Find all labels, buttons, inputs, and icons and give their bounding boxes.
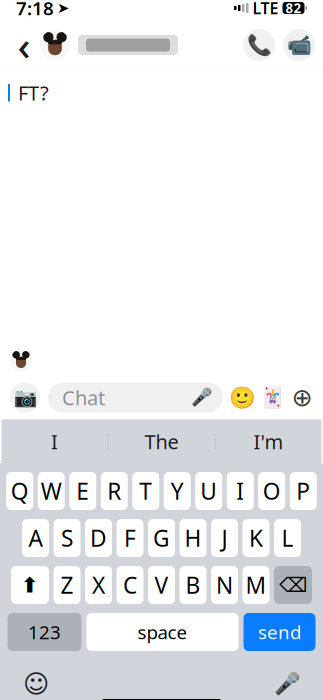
button[interactable]: I <box>227 472 254 510</box>
staticText: I'm <box>253 428 283 455</box>
staticText: V <box>154 570 168 600</box>
button[interactable]: O <box>258 472 285 510</box>
button[interactable]: Dictation <box>267 664 307 700</box>
staticText: U <box>200 476 217 506</box>
staticText: ⌫ <box>279 574 307 596</box>
staticText: N <box>216 570 233 600</box>
staticText: ⊕ <box>291 383 312 412</box>
staticText: P <box>296 476 310 506</box>
staticText: I <box>236 476 244 506</box>
staticText: R <box>107 476 121 506</box>
staticText: E <box>76 476 89 506</box>
staticText: 🃏 <box>259 386 284 409</box>
staticText: FT? <box>18 79 49 106</box>
button[interactable]: Video call <box>283 29 315 61</box>
staticText: ➤ <box>57 0 69 16</box>
staticText: W <box>41 476 62 506</box>
button[interactable]: Y <box>164 472 191 510</box>
button[interactable]: K <box>242 519 269 557</box>
staticText: ⬆ <box>21 573 39 597</box>
staticText: 🎤 <box>273 672 300 696</box>
button[interactable]: space <box>86 613 238 651</box>
button[interactable]: Delete <box>274 566 312 604</box>
staticText: L <box>281 523 293 553</box>
button[interactable] <box>40 30 178 60</box>
button[interactable]: U <box>195 472 222 510</box>
staticText: K <box>249 523 263 553</box>
staticText: G <box>153 523 170 553</box>
button[interactable]: G <box>148 519 175 557</box>
staticText: 7:18 <box>16 0 54 20</box>
button[interactable]: The <box>108 419 214 463</box>
staticText: 82 <box>285 0 301 17</box>
staticText: H <box>184 523 201 553</box>
button[interactable]: S <box>53 519 80 557</box>
button[interactable]: Stickers <box>261 382 283 412</box>
staticText: LTE <box>252 0 278 19</box>
button[interactable]: L <box>274 519 301 557</box>
button[interactable]: R <box>101 472 128 510</box>
staticText: space <box>137 620 187 644</box>
staticText: The <box>144 428 178 455</box>
button[interactable]: J <box>211 519 238 557</box>
button[interactable]: I'm <box>215 419 321 463</box>
staticText: D <box>90 523 107 553</box>
staticText: 📹 <box>286 34 311 56</box>
button[interactable]: Shift <box>11 566 49 604</box>
staticText: C <box>123 570 137 600</box>
button[interactable]: More options <box>291 382 313 412</box>
staticText: M <box>245 570 266 600</box>
button[interactable]: B <box>179 566 206 604</box>
button[interactable]: Audio call <box>243 29 275 61</box>
button[interactable]: F <box>116 519 143 557</box>
staticText: B <box>185 570 200 600</box>
staticText: 📷 <box>13 387 36 408</box>
button[interactable]: Emoji <box>231 382 253 412</box>
staticText: Y <box>171 476 184 506</box>
staticText: 🎤 <box>191 388 213 407</box>
button[interactable]: Emoji keyboard <box>16 664 56 700</box>
staticText: O <box>263 476 281 506</box>
staticText: Chat <box>62 384 105 411</box>
staticText: J <box>221 523 227 553</box>
staticText: A <box>28 523 42 553</box>
button[interactable]: 123 <box>7 613 81 651</box>
button[interactable]: N <box>211 566 238 604</box>
button[interactable]: T <box>132 472 159 510</box>
button[interactable]: V <box>148 566 175 604</box>
staticText: F <box>124 523 136 553</box>
button[interactable]: Q <box>6 472 33 510</box>
staticText: I <box>51 428 58 455</box>
button[interactable]: send <box>243 613 315 651</box>
staticText: Q <box>11 476 29 506</box>
staticText: 🙂 <box>228 385 255 410</box>
button[interactable]: A <box>22 519 49 557</box>
staticText: ☺ <box>23 670 49 698</box>
staticText: T <box>139 476 152 506</box>
button[interactable]: W <box>38 472 65 510</box>
staticText: X <box>92 570 105 600</box>
button[interactable]: Chat <box>48 382 223 412</box>
staticText: ‹ <box>17 18 30 71</box>
staticText: S <box>61 523 73 553</box>
button[interactable]: D <box>85 519 112 557</box>
staticText: Z <box>60 570 73 600</box>
staticText: 📞 <box>246 34 271 56</box>
button[interactable]: P <box>290 472 317 510</box>
button[interactable]: X <box>85 566 112 604</box>
button[interactable]: Z <box>53 566 80 604</box>
button[interactable]: C <box>116 566 143 604</box>
button[interactable]: H <box>179 519 206 557</box>
button[interactable]: Back <box>8 25 40 65</box>
button[interactable]: I <box>1 419 107 463</box>
button[interactable]: M <box>242 566 269 604</box>
button[interactable]: Camera <box>10 382 40 412</box>
staticText: send <box>258 620 301 644</box>
staticText: 123 <box>28 620 61 644</box>
button[interactable]: E <box>69 472 96 510</box>
